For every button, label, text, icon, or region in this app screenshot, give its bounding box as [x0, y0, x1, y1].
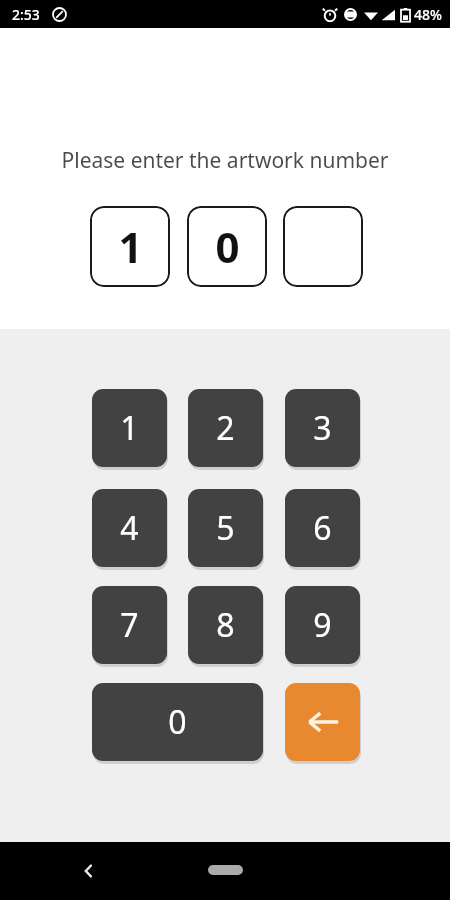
staticText: 6: [313, 506, 332, 550]
staticText: 5: [216, 506, 235, 550]
staticText: 0: [215, 218, 240, 275]
staticText: 9: [313, 603, 332, 647]
staticText: 2:53: [12, 5, 40, 24]
staticText: 1: [120, 406, 139, 450]
staticText: 48%: [414, 5, 442, 24]
staticText: 4: [120, 506, 139, 550]
button[interactable]: Home: [208, 865, 243, 875]
button[interactable]: 0: [92, 683, 263, 761]
button[interactable]: 8: [188, 586, 263, 664]
button[interactable]: 0: [187, 206, 267, 287]
button[interactable]: Backspace: [285, 683, 360, 761]
button[interactable]: 3: [285, 389, 360, 467]
staticText: 2: [216, 406, 235, 450]
staticText: 7: [120, 603, 139, 647]
staticText: 8: [216, 603, 235, 647]
staticText: 3: [313, 406, 332, 450]
staticText: 0: [168, 700, 187, 744]
staticText: 1: [118, 218, 143, 275]
staticText: Please enter the artwork number: [0, 146, 450, 175]
button[interactable]: Back: [72, 854, 106, 888]
button[interactable]: 1: [92, 389, 167, 467]
button[interactable]: 9: [285, 586, 360, 664]
button[interactable]: 5: [188, 489, 263, 567]
button[interactable]: 6: [285, 489, 360, 567]
button[interactable]: 1: [90, 206, 170, 287]
button[interactable]: 2: [188, 389, 263, 467]
button[interactable]: 7: [92, 586, 167, 664]
button[interactable]: 4: [92, 489, 167, 567]
button[interactable]: [283, 206, 363, 287]
